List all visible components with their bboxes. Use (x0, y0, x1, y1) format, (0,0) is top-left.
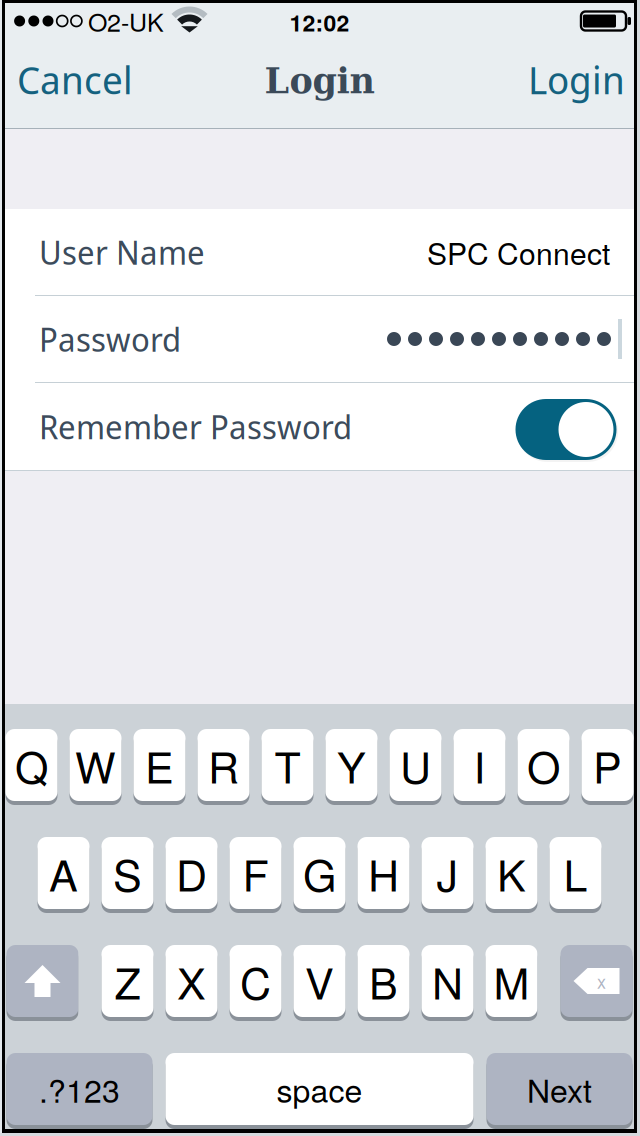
staticText: R (208, 734, 239, 796)
staticText: Q (15, 734, 48, 796)
button[interactable]: Y (325, 729, 377, 805)
button[interactable]: E (133, 729, 185, 805)
button[interactable]: space (165, 1053, 473, 1129)
staticText: F (242, 842, 268, 904)
button[interactable]: X (165, 945, 217, 1021)
staticText: X (177, 950, 206, 1012)
staticText: Login (528, 52, 625, 105)
button[interactable]: H (357, 837, 409, 913)
button[interactable]: K (485, 837, 537, 913)
staticText: Y (337, 734, 366, 796)
staticText: D (176, 842, 207, 904)
button[interactable]: G (293, 837, 345, 913)
staticText: U (400, 734, 431, 796)
button[interactable]: Delete (560, 945, 632, 1021)
staticText: V (305, 950, 334, 1012)
button[interactable]: P (581, 729, 633, 805)
button[interactable]: A (37, 837, 89, 913)
staticText: I (473, 734, 485, 796)
staticText: Login (264, 60, 374, 101)
staticText: Remember Password (39, 404, 352, 449)
staticText: N (432, 950, 463, 1012)
button[interactable]: Q (5, 729, 57, 805)
staticText: E (145, 734, 174, 796)
staticText: x (597, 968, 606, 994)
staticText: C (240, 950, 271, 1012)
button[interactable]: U (389, 729, 441, 805)
button[interactable]: W (69, 729, 121, 805)
button[interactable]: S (101, 837, 153, 913)
staticText: O (527, 734, 560, 796)
button[interactable]: I (453, 729, 505, 805)
staticText: G (303, 842, 336, 904)
staticText: M (493, 950, 529, 1012)
staticText: 12:02 (289, 5, 349, 38)
staticText: H (368, 842, 399, 904)
staticText: O2-UK (88, 3, 164, 39)
staticText: Cancel (17, 52, 133, 105)
staticText: L (563, 842, 587, 904)
button[interactable]: Cancel (5, 43, 147, 128)
button[interactable]: D (165, 837, 217, 913)
staticText: Password (39, 316, 181, 361)
button[interactable]: M (485, 945, 537, 1021)
button[interactable]: .?123 (6, 1053, 152, 1129)
staticText: .?123 (39, 1066, 120, 1112)
staticText: User Name (39, 229, 205, 274)
staticText: A (49, 842, 78, 904)
button[interactable]: R (197, 729, 249, 805)
staticText: Z (114, 950, 140, 1012)
button[interactable]: Z (101, 945, 153, 1021)
staticText: W (75, 734, 116, 796)
button[interactable]: Remember Password (514, 391, 618, 462)
staticText: SPC Connect (427, 230, 610, 273)
button[interactable]: F (229, 837, 281, 913)
button[interactable]: T (261, 729, 313, 805)
staticText: S (113, 842, 142, 904)
button[interactable]: B (357, 945, 409, 1021)
staticText: B (369, 950, 398, 1012)
button[interactable]: J (421, 837, 473, 913)
button[interactable]: Shift (6, 945, 78, 1021)
button[interactable]: O (517, 729, 569, 805)
button[interactable]: C (229, 945, 281, 1021)
staticText: T (274, 734, 300, 796)
button[interactable]: Next (486, 1053, 632, 1129)
staticText: J (436, 842, 458, 904)
staticText: P (593, 734, 622, 796)
button[interactable]: V (293, 945, 345, 1021)
staticText: Next (527, 1066, 592, 1112)
button[interactable]: N (421, 945, 473, 1021)
staticText: space (276, 1066, 362, 1112)
button[interactable]: Login (514, 43, 634, 128)
staticText: K (497, 842, 526, 904)
button[interactable]: L (549, 837, 601, 913)
